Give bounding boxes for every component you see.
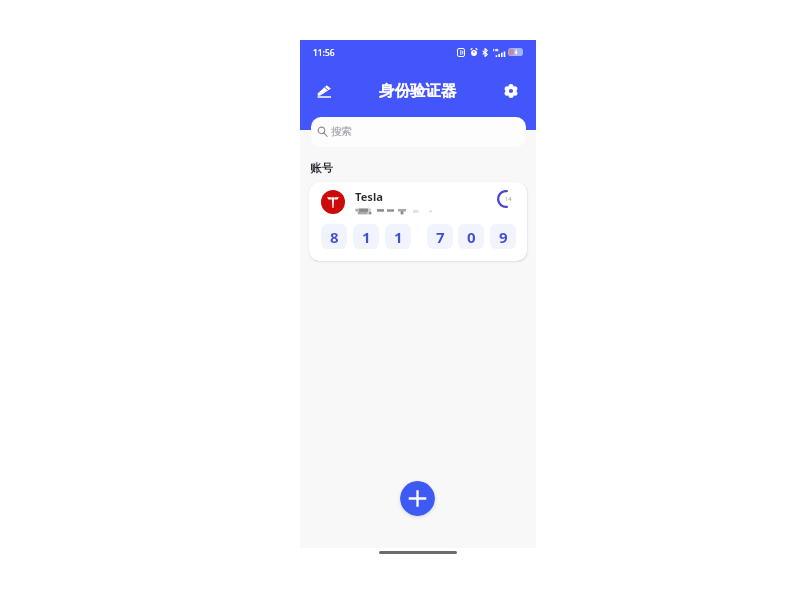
button[interactable]: Tesla [309, 182, 527, 261]
staticText: 0 [467, 227, 476, 247]
staticText: Tesla [355, 189, 384, 204]
staticText: 9 [499, 227, 508, 247]
staticText: 1 [394, 227, 403, 247]
staticText: 7 [436, 227, 445, 247]
staticText: 搜索 [331, 125, 352, 138]
staticText: 账号 [310, 161, 333, 175]
staticText: 身份验证器 [379, 81, 457, 101]
staticText: 1 [362, 227, 371, 247]
staticText: 8 [330, 227, 339, 247]
staticText: 11:56 [313, 47, 335, 58]
button[interactable]: Add account [400, 481, 435, 516]
button[interactable]: 搜索 [311, 117, 526, 147]
button[interactable]: Edit [309, 76, 339, 106]
staticText: 14 [505, 195, 512, 203]
button[interactable]: Settings [496, 76, 526, 106]
